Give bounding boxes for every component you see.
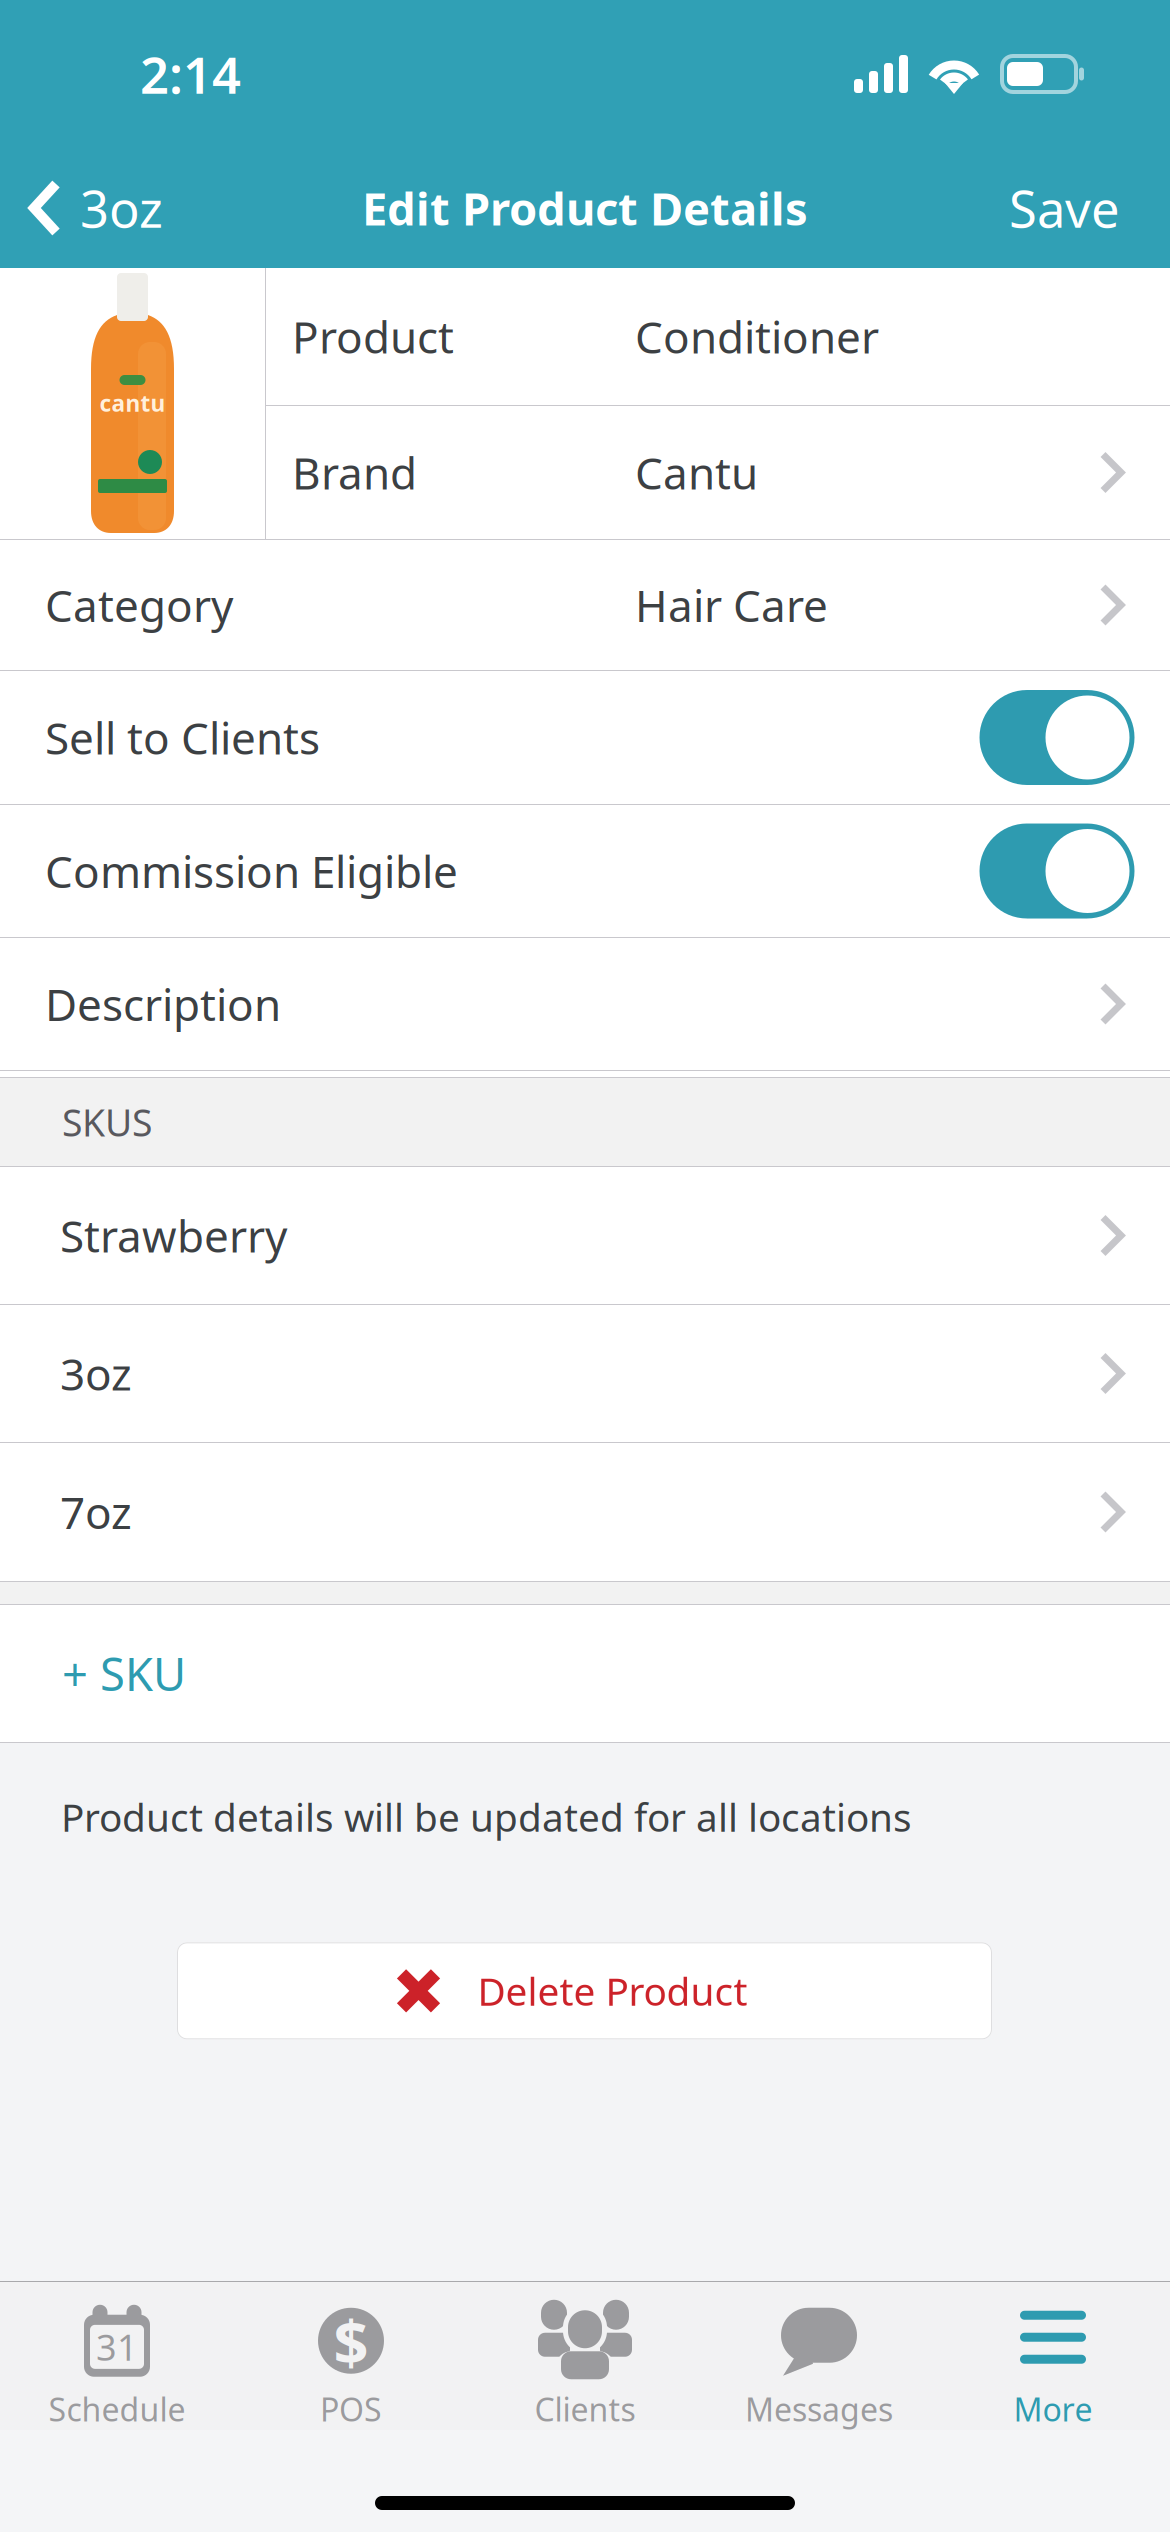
staticText: Product (292, 307, 454, 366)
staticText: More (1013, 2388, 1092, 2430)
button[interactable]: Category (0, 540, 1170, 670)
staticText: Schedule (48, 2388, 185, 2430)
button[interactable]: 3oz (0, 158, 163, 258)
staticText: $ (333, 2300, 368, 2381)
button[interactable]: Save (1009, 158, 1170, 258)
button[interactable]: Clients (468, 2282, 702, 2430)
staticText: SKUS (62, 1097, 152, 1147)
staticText: Cantu (635, 443, 758, 502)
button[interactable]: Strawberry (0, 1167, 1170, 1304)
button[interactable]: Messages (702, 2282, 936, 2430)
staticText: 2:14 (140, 40, 241, 108)
button[interactable]: Product (266, 268, 1170, 405)
staticText: Conditioner (635, 307, 879, 366)
button[interactable]: 7oz (0, 1443, 1170, 1581)
button[interactable]: + SKU (0, 1605, 1170, 1742)
button[interactable]: More (936, 2282, 1170, 2430)
button[interactable]: Brand (266, 406, 1170, 539)
staticText: Hair Care (635, 576, 828, 634)
button[interactable]: Description (0, 938, 1170, 1070)
button[interactable]: $ (234, 2282, 468, 2430)
staticText: + SKU (62, 1643, 186, 1704)
staticText: Save (1009, 174, 1120, 242)
staticText: Category (45, 576, 233, 634)
staticText: 7oz (60, 1483, 132, 1541)
staticText: Clients (534, 2388, 635, 2430)
staticText: POS (320, 2388, 382, 2430)
button[interactable]: 3oz (0, 1305, 1170, 1442)
staticText: Delete Product (477, 1965, 747, 2016)
staticText: Messages (745, 2388, 893, 2430)
staticText: Product details will be updated for all … (61, 1791, 912, 1842)
button[interactable]: Commission Eligible (0, 805, 1170, 937)
staticText: Sell to Clients (45, 708, 320, 767)
staticText: 31 (96, 2323, 138, 2371)
staticText: cantu (99, 388, 165, 418)
staticText: Description (45, 975, 281, 1033)
staticText: Strawberry (60, 1206, 287, 1265)
button[interactable]: 31 (0, 2282, 234, 2430)
staticText: 3oz (60, 1344, 132, 1403)
staticText: Brand (292, 443, 417, 502)
button[interactable]: Sell to Clients (0, 671, 1170, 804)
button[interactable]: Delete Product (0, 1842, 1170, 2039)
staticText: 3oz (80, 174, 163, 242)
staticText: Commission Eligible (45, 842, 458, 900)
staticText: Edit Product Details (362, 178, 808, 238)
